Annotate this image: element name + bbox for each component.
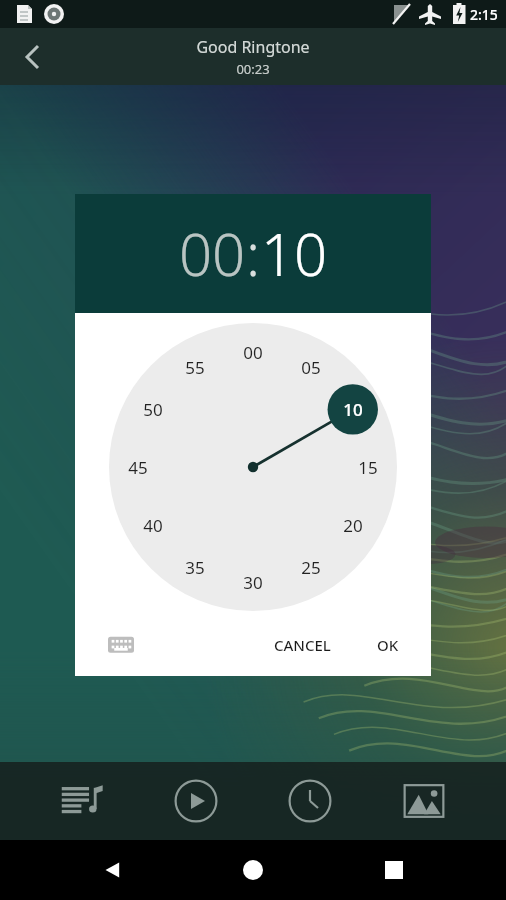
staticText: 40 xyxy=(143,514,163,537)
button[interactable]: 35 xyxy=(174,546,216,588)
staticText: : xyxy=(246,214,261,293)
button[interactable]: Play xyxy=(164,769,228,833)
button[interactable]: Recents xyxy=(366,842,422,898)
staticText: 35 xyxy=(185,556,205,579)
button[interactable]: CANCEL xyxy=(260,625,345,665)
button[interactable]: OK xyxy=(363,625,413,665)
staticText: 15 xyxy=(358,456,378,479)
button[interactable]: Gallery xyxy=(392,769,456,833)
staticText: 30 xyxy=(243,571,263,594)
button[interactable]: Back xyxy=(6,31,58,83)
button[interactable]: 40 xyxy=(132,504,174,546)
button[interactable]: 15 xyxy=(347,446,389,488)
staticText: 55 xyxy=(185,356,205,379)
button[interactable]: Timer xyxy=(278,769,342,833)
button[interactable]: Home xyxy=(225,842,281,898)
button[interactable]: Back xyxy=(85,842,141,898)
button[interactable]: Switch to text input xyxy=(101,625,141,665)
button[interactable]: 55 xyxy=(174,346,216,388)
staticText: Good Ringtone xyxy=(196,36,310,58)
staticText: 10 xyxy=(343,398,363,421)
staticText: 2:15 xyxy=(470,5,498,24)
button[interactable]: 00 xyxy=(232,331,274,373)
button[interactable]: 05 xyxy=(290,346,332,388)
button[interactable]: 50 xyxy=(132,388,174,430)
staticText: 00:23 xyxy=(236,60,270,78)
staticText: OK xyxy=(377,635,399,655)
staticText: 50 xyxy=(143,398,163,421)
button[interactable]: 10 xyxy=(261,214,328,293)
button[interactable]: 25 xyxy=(290,546,332,588)
staticText: 25 xyxy=(301,556,321,579)
button[interactable]: 30 xyxy=(232,561,274,603)
button[interactable]: 00 xyxy=(179,214,246,293)
button[interactable]: 10 xyxy=(332,388,374,430)
staticText: 45 xyxy=(128,456,148,479)
button[interactable]: 45 xyxy=(117,446,159,488)
staticText: 00 xyxy=(243,341,263,364)
button[interactable]: Playlist xyxy=(50,769,114,833)
staticText: 20 xyxy=(343,514,363,537)
staticText: 05 xyxy=(301,356,321,379)
button[interactable]: 20 xyxy=(332,504,374,546)
staticText: CANCEL xyxy=(274,635,331,655)
